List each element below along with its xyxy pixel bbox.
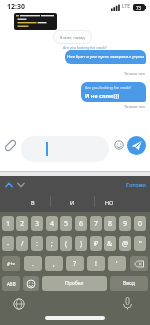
staticText: "	[139, 239, 142, 249]
button[interactable]: 5	[60, 216, 72, 231]
staticText: Только что	[124, 71, 145, 76]
staticText: НО	[105, 199, 114, 206]
staticText: 9	[123, 219, 128, 229]
button[interactable]: Ввод	[110, 276, 148, 291]
staticText: -	[7, 239, 10, 249]
staticText: 8 мин. назад	[60, 35, 85, 40]
button[interactable]: .	[24, 256, 42, 271]
staticText: #+=	[7, 261, 16, 267]
button[interactable]	[21, 136, 109, 162]
staticText: ?	[73, 259, 77, 269]
staticText: /	[21, 239, 24, 249]
staticText: 7	[94, 219, 99, 229]
staticText: &	[107, 239, 113, 249]
staticText: @	[122, 239, 129, 249]
staticText: 8	[108, 219, 113, 229]
button[interactable]: АБВ	[2, 276, 20, 291]
button[interactable]: "	[134, 236, 146, 251]
staticText: ,	[53, 259, 55, 269]
staticText: 0	[138, 219, 143, 229]
button[interactable]	[13, 298, 25, 310]
button[interactable]: Нев брат я уже куста захаракил утром	[65, 50, 146, 64]
button[interactable]: @	[119, 236, 131, 251]
staticText: )	[80, 239, 83, 249]
button[interactable]: 9	[119, 216, 131, 231]
button[interactable]: ₽	[90, 236, 102, 251]
button[interactable]	[114, 140, 124, 150]
button[interactable]: #+=	[2, 256, 20, 271]
button[interactable]: )	[75, 236, 87, 251]
button[interactable]: НО	[96, 196, 122, 208]
staticText: 6	[79, 219, 84, 229]
staticText: ;	[51, 239, 53, 249]
staticText: 73	[136, 5, 142, 11]
button[interactable]: 6	[75, 216, 87, 231]
button[interactable]: 2	[16, 216, 28, 231]
button[interactable]: Пробел	[42, 276, 107, 291]
button[interactable]: ?	[66, 256, 84, 271]
button[interactable]	[4, 138, 17, 153]
button[interactable]: 1	[2, 216, 14, 231]
staticText: 3	[35, 219, 40, 229]
button[interactable]: 0	[134, 216, 146, 231]
button[interactable]: 3	[31, 216, 43, 231]
button[interactable]	[23, 276, 39, 291]
staticText: '	[116, 259, 118, 269]
button[interactable]: Готово	[126, 181, 146, 189]
button[interactable]: 7	[90, 216, 102, 231]
staticText: АБВ	[7, 281, 16, 287]
staticText: (	[65, 239, 68, 249]
staticText: И	[70, 199, 75, 206]
staticText: 5	[64, 219, 69, 229]
button[interactable]: &	[104, 236, 116, 251]
staticText: :	[36, 239, 38, 249]
staticText: Are you looking for crack?	[85, 85, 131, 90]
staticText: И не сплю)))	[85, 92, 120, 99]
staticText: В	[31, 199, 35, 206]
staticText: 1	[6, 219, 11, 229]
staticText: 12:30	[7, 2, 25, 12]
button[interactable]: -	[2, 236, 14, 251]
button[interactable]: 8	[104, 216, 116, 231]
button[interactable]: 4	[46, 216, 58, 231]
staticText: LTE	[122, 3, 131, 10]
staticText: Только что	[124, 104, 145, 109]
button[interactable]: Are you looking for crack?	[81, 82, 146, 102]
button[interactable]	[5, 182, 13, 188]
button[interactable]: И	[59, 196, 85, 208]
button[interactable]: !	[87, 256, 105, 271]
button[interactable]	[122, 297, 133, 311]
staticText: !	[95, 259, 97, 269]
button[interactable]: :	[31, 236, 43, 251]
button[interactable]: ,	[45, 256, 63, 271]
staticText: 2	[20, 219, 25, 229]
button[interactable]: В	[20, 196, 46, 208]
staticText: ₽	[94, 239, 99, 249]
button[interactable]	[17, 182, 25, 188]
staticText: Ввод	[123, 280, 136, 287]
staticText: Are you looking for crack?	[63, 45, 107, 50]
button[interactable]: ;	[46, 236, 58, 251]
staticText: .	[32, 259, 34, 269]
button[interactable]: (	[60, 236, 72, 251]
button[interactable]: /	[16, 236, 28, 251]
staticText: Нев брат я уже куста захаракил утром	[67, 54, 145, 60]
button[interactable]: '	[108, 256, 126, 271]
button[interactable]	[130, 256, 148, 271]
staticText: Пробел	[65, 280, 84, 287]
button[interactable]	[127, 136, 146, 155]
staticText: Готово	[126, 181, 146, 189]
staticText: 4	[50, 219, 55, 229]
